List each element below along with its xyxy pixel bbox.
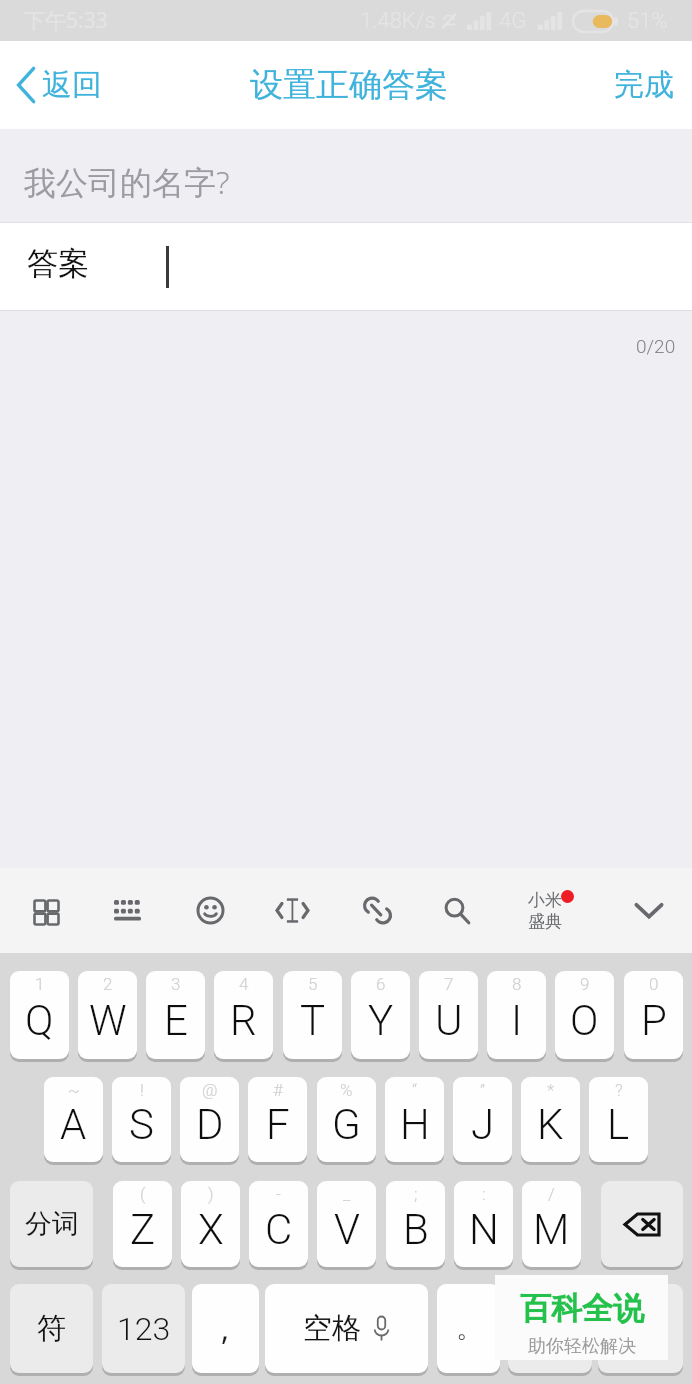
button[interactable]: 分词 xyxy=(10,1181,93,1267)
staticText: E xyxy=(164,996,188,1045)
button[interactable]: 2 xyxy=(78,971,137,1059)
staticText: 0/20 xyxy=(636,335,676,357)
staticText: S xyxy=(129,1100,154,1149)
staticText: : xyxy=(482,1184,486,1204)
staticText: / xyxy=(548,1184,555,1204)
button[interactable]: 123 xyxy=(102,1284,185,1373)
button[interactable]: 。 xyxy=(437,1284,500,1373)
button[interactable]: “ xyxy=(385,1077,444,1162)
staticText: G xyxy=(332,1100,361,1149)
button[interactable]: ~ xyxy=(44,1077,103,1162)
button[interactable]: 返回 xyxy=(0,41,112,129)
button[interactable]: Link xyxy=(336,868,418,953)
staticText: D xyxy=(196,1100,224,1149)
staticText: 9 xyxy=(580,974,590,994)
staticText: - xyxy=(276,1184,281,1204)
button[interactable]: 空格 xyxy=(265,1284,428,1373)
staticText: N xyxy=(469,1205,499,1254)
button[interactable]: ) xyxy=(181,1181,240,1267)
staticText: J xyxy=(471,1100,495,1149)
staticText: @ xyxy=(202,1080,218,1100)
button[interactable]: ( xyxy=(113,1181,172,1267)
staticText: 7 xyxy=(444,974,454,994)
staticText: “ xyxy=(412,1080,418,1100)
button[interactable]: 完成 xyxy=(590,41,692,129)
button[interactable]: # xyxy=(248,1077,307,1162)
staticText: K xyxy=(537,1100,564,1149)
staticText: 5 xyxy=(308,974,318,994)
staticText: M xyxy=(533,1205,570,1254)
staticText: 下午5:33 xyxy=(24,6,108,35)
staticText: ( xyxy=(140,1184,146,1204)
button[interactable]: / xyxy=(522,1181,581,1267)
button[interactable]: 5 xyxy=(283,971,342,1059)
staticText: 符 xyxy=(37,1310,66,1347)
staticText: 6 xyxy=(376,974,386,994)
button[interactable]: ? xyxy=(589,1077,648,1162)
staticText: P xyxy=(641,996,667,1045)
staticText: ” xyxy=(480,1080,486,1100)
button[interactable]: 3 xyxy=(146,971,205,1059)
staticText: 助你轻松解决 xyxy=(528,1335,636,1358)
staticText: Q xyxy=(25,996,54,1045)
button[interactable]: 符 xyxy=(10,1284,93,1373)
button[interactable]: _ xyxy=(317,1181,376,1267)
button[interactable]: Emoji xyxy=(169,868,251,953)
staticText: 设置正确答案 xyxy=(250,64,448,106)
button[interactable]: 0 xyxy=(624,971,683,1059)
staticText: 返回 xyxy=(42,66,102,104)
button[interactable] xyxy=(508,1284,592,1373)
staticText: 完成 xyxy=(614,66,674,104)
button[interactable]: , xyxy=(192,1284,259,1373)
button[interactable]: 8 xyxy=(487,971,546,1059)
button[interactable]: ; xyxy=(386,1181,445,1267)
staticText: % xyxy=(340,1080,353,1100)
staticText: 小米 xyxy=(528,890,562,911)
staticText: 1 xyxy=(35,974,45,994)
button[interactable]: 4 xyxy=(214,971,273,1059)
button[interactable]: Symbols xyxy=(4,868,86,953)
button[interactable]: @ xyxy=(180,1077,239,1162)
staticText: A xyxy=(60,1100,87,1149)
staticText: F xyxy=(266,1100,290,1149)
button[interactable] xyxy=(598,1284,683,1373)
staticText: U xyxy=(435,996,463,1045)
button[interactable]: 9 xyxy=(555,971,614,1059)
button[interactable]: % xyxy=(317,1077,376,1162)
staticText: W xyxy=(89,996,127,1045)
staticText: ? xyxy=(615,1080,623,1100)
staticText: , xyxy=(221,1308,230,1349)
button[interactable]: 1 xyxy=(10,971,69,1059)
button[interactable]: Backspace xyxy=(601,1181,683,1267)
button[interactable]: 6 xyxy=(351,971,410,1059)
staticText: 空格 xyxy=(303,1310,361,1347)
staticText: 4 xyxy=(239,974,249,994)
staticText: ~ xyxy=(68,1080,80,1100)
button[interactable]: * xyxy=(521,1077,580,1162)
staticText: H xyxy=(400,1100,430,1149)
button[interactable]: Move cursor xyxy=(251,868,333,953)
button[interactable]: Search xyxy=(416,868,498,953)
staticText: 盛典 xyxy=(528,911,562,932)
staticText: 0 xyxy=(649,974,659,994)
staticText: V xyxy=(334,1205,360,1254)
button[interactable]: : xyxy=(454,1181,513,1267)
staticText: 4G xyxy=(499,8,527,34)
staticText: 1.48K/s xyxy=(360,8,436,34)
staticText: 。 xyxy=(456,1312,482,1345)
staticText: Z xyxy=(130,1205,156,1254)
button[interactable]: 百科全说 xyxy=(495,1275,668,1360)
button[interactable]: - xyxy=(249,1181,308,1267)
button[interactable]: Keyboard layout xyxy=(86,868,168,953)
button[interactable]: Hide keyboard xyxy=(608,868,690,953)
button[interactable]: ” xyxy=(453,1077,512,1162)
staticText: Y xyxy=(368,996,394,1045)
button[interactable]: Xiaomi festival xyxy=(504,868,586,953)
button[interactable]: ! xyxy=(112,1077,171,1162)
staticText: 答案 xyxy=(27,244,89,283)
staticText: O xyxy=(570,996,599,1045)
button[interactable]: 7 xyxy=(419,971,478,1059)
staticText: 123 xyxy=(117,1310,171,1348)
staticText: 分词 xyxy=(25,1207,79,1241)
staticText: T xyxy=(300,996,326,1045)
